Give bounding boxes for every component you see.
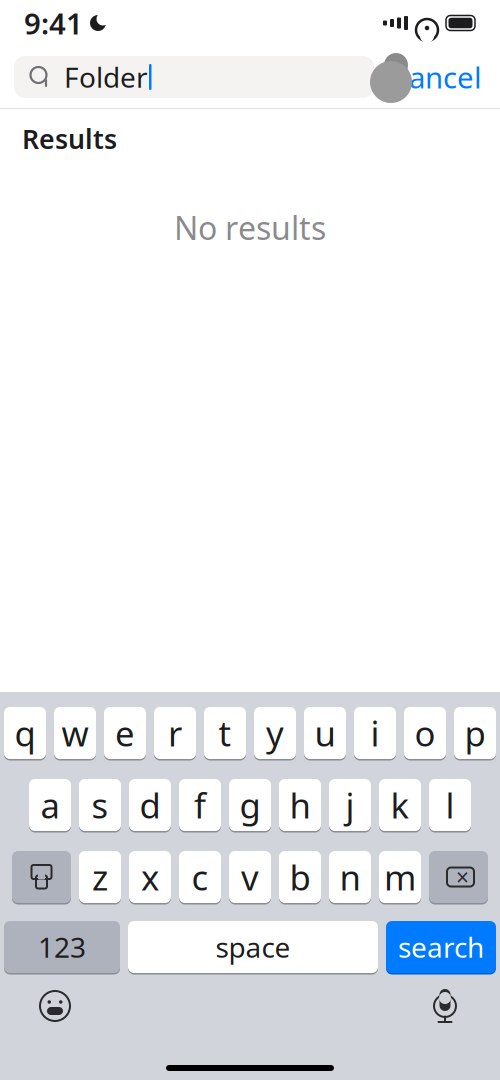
- staticText: u: [314, 710, 335, 756]
- button[interactable]: s: [79, 778, 121, 832]
- staticText: Folder: [64, 58, 148, 96]
- staticText: i: [370, 710, 379, 756]
- button[interactable]: t: [204, 706, 246, 760]
- staticText: q: [14, 710, 35, 756]
- button[interactable]: w: [54, 706, 96, 760]
- button[interactable]: h: [279, 778, 321, 832]
- staticText: No results: [174, 206, 326, 249]
- staticText: o: [414, 710, 435, 756]
- staticText: c: [191, 854, 208, 900]
- staticText: h: [289, 782, 310, 828]
- staticText: 123: [38, 928, 86, 966]
- staticText: j: [345, 782, 354, 828]
- button[interactable]: y: [254, 706, 296, 760]
- button[interactable]: search: [386, 920, 496, 974]
- button[interactable]: Shift: [12, 850, 71, 904]
- staticText: r: [168, 710, 182, 756]
- staticText: ×: [456, 862, 469, 892]
- button[interactable]: space: [128, 920, 378, 974]
- button[interactable]: i: [354, 706, 396, 760]
- button[interactable]: g: [229, 778, 271, 832]
- staticText: b: [289, 854, 310, 900]
- staticText: k: [390, 782, 409, 828]
- staticText: m: [384, 854, 416, 900]
- staticText: 9:41: [24, 3, 83, 42]
- staticText: l: [445, 782, 454, 828]
- button[interactable]: b: [279, 850, 321, 904]
- staticText: f: [194, 782, 206, 828]
- button[interactable]: e: [104, 706, 146, 760]
- staticText: g: [239, 782, 260, 828]
- button[interactable]: a: [29, 778, 71, 832]
- button[interactable]: q: [4, 706, 46, 760]
- button[interactable]: Emoji: [33, 984, 77, 1028]
- staticText: space: [215, 928, 290, 966]
- button[interactable]: o: [404, 706, 446, 760]
- staticText: z: [92, 854, 108, 900]
- staticText: search: [398, 928, 484, 966]
- staticText: d: [139, 782, 160, 828]
- button[interactable]: x: [129, 850, 171, 904]
- button[interactable]: v: [229, 850, 271, 904]
- button[interactable]: Delete: [429, 850, 488, 904]
- button[interactable]: z: [79, 850, 121, 904]
- button[interactable]: Dictation: [423, 984, 467, 1028]
- staticText: s: [91, 782, 108, 828]
- button[interactable]: u: [304, 706, 346, 760]
- staticText: Cancel: [390, 57, 482, 96]
- button[interactable]: c: [179, 850, 221, 904]
- staticText: y: [266, 710, 284, 756]
- button[interactable]: Profile: [368, 50, 414, 104]
- staticText: n: [339, 854, 360, 900]
- button[interactable]: n: [329, 850, 371, 904]
- staticText: a: [40, 782, 59, 828]
- button[interactable]: Cancel: [374, 56, 486, 98]
- button[interactable]: 123: [4, 920, 120, 974]
- staticText: x: [141, 854, 159, 900]
- staticText: v: [241, 854, 259, 900]
- button[interactable]: m: [379, 850, 421, 904]
- staticText: t: [218, 710, 231, 756]
- button[interactable]: k: [379, 778, 421, 832]
- button[interactable]: j: [329, 778, 371, 832]
- button[interactable]: r: [154, 706, 196, 760]
- staticText: e: [115, 710, 135, 756]
- button[interactable]: p: [454, 706, 496, 760]
- staticText: p: [464, 710, 485, 756]
- staticText: Results: [22, 121, 117, 156]
- button[interactable]: d: [129, 778, 171, 832]
- button[interactable]: f: [179, 778, 221, 832]
- staticText: w: [61, 710, 88, 756]
- button[interactable]: l: [429, 778, 471, 832]
